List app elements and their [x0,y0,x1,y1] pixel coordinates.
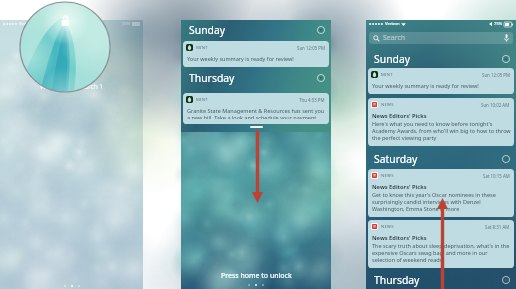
button[interactable]: Search [369,32,513,44]
staticText: Sun 10:02 AM [481,102,510,108]
button[interactable]: Clear Thursday notifications [317,74,325,82]
button[interactable]: NEWS [368,220,514,268]
button[interactable]: Clear Thursday notifications [502,276,510,284]
button[interactable]: Clear Sunday notifications [502,55,510,63]
staticText: Your weekly summary is ready for review! [187,55,294,62]
staticText: Saturday [374,152,418,166]
staticText: Sunday [374,52,411,66]
staticText: News Editors' Picks [372,183,427,191]
staticText: Thursday [189,71,235,85]
staticText: Thursday [374,273,420,287]
staticText: Verizon [385,21,400,27]
button[interactable]: MINT [368,68,514,94]
staticText: Sun 12:05 PM [482,72,510,78]
staticText: Get to know this year's Oscar nominees i… [372,191,511,212]
button[interactable]: NEWS [368,169,514,217]
staticText: Press home to unlock [221,271,292,281]
staticText: Granite State Management & Resources has… [187,107,326,119]
button[interactable]: Clear Saturday notifications [502,155,510,163]
button[interactable]: MINT [183,41,329,67]
staticText: MINT [196,97,208,103]
staticText: Sunday [189,23,226,37]
staticText: News Editors' Picks [372,112,427,120]
staticText: MINT [196,45,208,51]
staticText: MINT [381,72,393,78]
staticText: Sun 12:05 PM [297,45,325,51]
staticText: Thu 4:53 PM [299,97,325,103]
button[interactable]: NEWS [368,98,514,146]
staticText: Here's what you need to know before toni… [372,120,511,141]
staticText: News Editors' Picks [372,234,427,242]
button[interactable]: MINT [183,93,329,124]
staticText: The scary truth about sleep deprivation,… [372,242,511,263]
staticText: Your weekly summary is ready for review! [372,82,479,89]
staticText: Sat 8:31 AM [485,224,510,230]
staticText: NEWS [381,173,394,179]
staticText: NEWS [381,102,394,108]
staticText: Search [383,33,406,43]
staticText: Verizon [19,21,34,27]
staticText: Sat 10:15 AM [483,173,510,179]
staticText: NEWS [381,224,394,230]
staticText: Wednesday, March 1 [40,82,104,91]
staticText: 75% [494,21,503,27]
button[interactable]: Clear Sunday notifications [317,26,325,34]
staticText: 75% [122,21,131,27]
